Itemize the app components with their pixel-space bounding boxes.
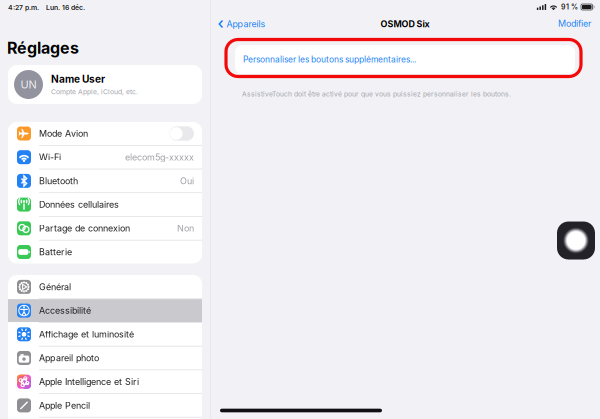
staticText: Réglages bbox=[7, 38, 79, 58]
staticText: AssistiveTouch doit être activé pour que… bbox=[242, 90, 511, 98]
button[interactable]: Données cellulaires bbox=[8, 193, 202, 216]
button[interactable]: Partage de connexion bbox=[8, 217, 202, 240]
staticText: Batterie bbox=[39, 247, 72, 257]
staticText: 4:27 p.m. bbox=[8, 3, 39, 12]
staticText: Appareils bbox=[226, 19, 265, 29]
staticText: Mode Avion bbox=[39, 128, 88, 139]
staticText: Personnaliser les boutons supplémentaire… bbox=[243, 54, 416, 65]
staticText: Bluetooth bbox=[39, 175, 78, 186]
button[interactable]: Bluetooth bbox=[8, 169, 202, 192]
button[interactable]: Appareil photo bbox=[8, 346, 202, 369]
staticText: Apple Intelligence et Siri bbox=[39, 376, 139, 387]
staticText: Modifier bbox=[558, 18, 591, 29]
button[interactable]: Affichage et luminosité bbox=[8, 323, 202, 346]
staticText: Compte Apple, iCloud, etc. bbox=[51, 88, 138, 96]
staticText: Partage de connexion bbox=[39, 223, 130, 234]
button[interactable]: Accessibilité bbox=[8, 299, 202, 322]
button[interactable]: Batterie bbox=[8, 240, 202, 263]
button[interactable]: Mode Avion bbox=[8, 122, 202, 145]
staticText: OSMOD Six bbox=[380, 19, 429, 29]
button[interactable]: Personnaliser les boutons supplémentaire… bbox=[235, 45, 575, 74]
staticText: Apple Pencil bbox=[39, 400, 90, 411]
staticText: 91 % bbox=[561, 3, 578, 11]
button[interactable]: Apple Pencil bbox=[8, 394, 202, 417]
staticText: Oui bbox=[180, 175, 194, 186]
button[interactable]: Apple Intelligence et Siri bbox=[8, 370, 202, 393]
staticText: Lun. 16 déc. bbox=[46, 3, 85, 12]
button[interactable]: Appareils bbox=[218, 16, 294, 32]
staticText: Non bbox=[177, 223, 194, 234]
button[interactable]: Wi-Fi bbox=[8, 146, 202, 169]
staticText: Général bbox=[39, 281, 71, 292]
staticText: Appareil photo bbox=[39, 353, 99, 363]
staticText: Wi-Fi bbox=[39, 152, 61, 163]
staticText: Données cellulaires bbox=[39, 199, 119, 210]
button[interactable]: Général bbox=[8, 275, 202, 298]
staticText: Name User bbox=[51, 73, 105, 85]
staticText: Affichage et luminosité bbox=[39, 329, 134, 340]
staticText: Accessibilité bbox=[39, 305, 91, 316]
staticText: UN bbox=[20, 78, 36, 91]
button[interactable]: UN bbox=[8, 65, 202, 104]
staticText: elecom5g-xxxxx bbox=[125, 152, 194, 163]
button[interactable]: Modifier bbox=[541, 15, 591, 31]
